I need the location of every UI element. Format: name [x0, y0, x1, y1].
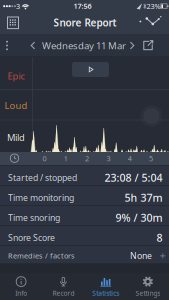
- staticText: Statistics: [92, 289, 119, 298]
- staticText: 3: [106, 153, 110, 163]
- staticText: Info: [15, 289, 27, 298]
- staticText: 8: [156, 231, 162, 245]
- staticText: 5h 37m: [124, 191, 162, 205]
- button[interactable]: Remedies / factors: [0, 246, 169, 263]
- staticText: 23%: [147, 1, 161, 11]
- button[interactable]: Record: [42, 273, 84, 300]
- button[interactable]: Settings: [127, 273, 169, 300]
- button[interactable]: Previous day: [28, 39, 38, 51]
- staticText: 23:08 / 5:04: [104, 171, 162, 185]
- staticText: Record: [52, 289, 74, 298]
- button[interactable]: Trends: [137, 13, 163, 29]
- staticText: 0: [42, 153, 46, 163]
- staticText: Started / stopped: [8, 172, 77, 183]
- staticText: Mild: [7, 131, 25, 144]
- staticText: Time monitoring: [8, 192, 74, 203]
- button[interactable]: Info: [0, 273, 42, 300]
- staticText: Remedies / factors: [8, 251, 75, 260]
- staticText: Snore Score: [8, 232, 55, 243]
- button[interactable]: Next day: [127, 39, 137, 51]
- staticText: 2: [85, 153, 89, 163]
- staticText: 4: [128, 153, 132, 163]
- staticText: 3: [16, 1, 20, 11]
- staticText: Time snoring: [8, 212, 60, 223]
- button[interactable]: Play: [72, 62, 109, 77]
- button[interactable]: Session diary: [4, 14, 22, 32]
- staticText: Wednesday 11 Mar: [42, 39, 126, 52]
- button[interactable]: Share: [141, 38, 155, 52]
- button[interactable]: Statistics: [84, 273, 127, 300]
- button[interactable]: Menu: [2, 38, 12, 52]
- staticText: Epic: [7, 70, 24, 82]
- staticText: 5: [149, 153, 153, 163]
- staticText: Loud: [4, 99, 27, 112]
- button[interactable]: Wednesday 11 Mar: [34, 38, 134, 52]
- staticText: None: [130, 250, 152, 261]
- staticText: 17:56: [73, 1, 91, 11]
- staticText: Settings: [135, 289, 160, 298]
- staticText: Snore Report: [53, 16, 116, 29]
- staticText: 1: [64, 153, 68, 163]
- staticText: 9% / 30m: [115, 211, 162, 225]
